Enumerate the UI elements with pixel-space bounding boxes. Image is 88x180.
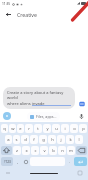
button[interactable]: t bbox=[34, 124, 42, 133]
staticText: Files, apps... bbox=[36, 114, 57, 119]
button[interactable]: n bbox=[58, 146, 66, 155]
button[interactable]: o bbox=[70, 124, 78, 133]
staticText: m bbox=[69, 148, 73, 154]
staticText: o bbox=[73, 126, 76, 132]
staticText: b bbox=[52, 148, 55, 154]
staticText: x bbox=[25, 148, 28, 154]
staticText: a bbox=[7, 137, 10, 143]
button[interactable]: x bbox=[22, 146, 30, 155]
staticText: j bbox=[60, 137, 62, 143]
staticText: where aliens bbox=[7, 101, 32, 106]
staticText: h bbox=[51, 137, 54, 143]
button[interactable]: Enter bbox=[74, 157, 87, 166]
button[interactable]: r bbox=[25, 124, 33, 133]
button[interactable]: Shift bbox=[1, 146, 12, 155]
button[interactable]: e bbox=[17, 124, 24, 133]
staticText: f bbox=[33, 137, 35, 143]
button[interactable]: Create a story about a fantasy world bbox=[3, 87, 75, 109]
staticText: w bbox=[11, 126, 15, 132]
staticText: invade bbox=[32, 101, 45, 106]
staticText: v bbox=[43, 148, 46, 154]
button[interactable]: Emoji bbox=[22, 157, 29, 166]
button[interactable]: h bbox=[48, 135, 56, 144]
button[interactable]: Files, apps... bbox=[27, 112, 60, 121]
staticText: z bbox=[16, 148, 18, 154]
staticText: Create a story about a fantasy world bbox=[7, 90, 71, 100]
button[interactable]: . bbox=[66, 157, 73, 166]
staticText: y bbox=[46, 126, 49, 132]
button[interactable]: u bbox=[52, 124, 60, 133]
button[interactable]: k bbox=[66, 135, 74, 144]
button[interactable]: z bbox=[13, 146, 21, 155]
button[interactable]: p bbox=[79, 124, 87, 133]
staticText: d bbox=[24, 137, 27, 143]
button[interactable]: Voice input bbox=[77, 112, 85, 120]
button[interactable]: i bbox=[61, 124, 69, 133]
staticText: c bbox=[34, 148, 37, 154]
button[interactable]: l bbox=[75, 135, 83, 144]
button[interactable]: a bbox=[5, 135, 12, 144]
button[interactable]: s bbox=[13, 135, 20, 144]
staticText: ?123 bbox=[4, 160, 11, 164]
staticText: r bbox=[28, 126, 30, 132]
button[interactable]: , bbox=[14, 157, 21, 166]
staticText: Creative bbox=[17, 11, 37, 18]
button[interactable]: d bbox=[21, 135, 29, 144]
button[interactable]: m bbox=[67, 146, 75, 155]
button[interactable]: Back bbox=[3, 9, 13, 19]
staticText: i bbox=[64, 126, 66, 132]
button[interactable]: Assistant bbox=[3, 112, 11, 120]
button[interactable]: w bbox=[9, 124, 16, 133]
button[interactable]: v bbox=[40, 146, 48, 155]
staticText: k bbox=[69, 137, 72, 143]
button[interactable]: Backspace bbox=[76, 146, 87, 155]
staticText: t bbox=[37, 126, 39, 132]
button[interactable]: f bbox=[30, 135, 38, 144]
button[interactable]: b bbox=[49, 146, 57, 155]
staticText: s bbox=[15, 137, 18, 143]
button[interactable]: ?123 bbox=[1, 157, 13, 166]
button[interactable]: Send bbox=[77, 99, 86, 108]
staticText: p bbox=[82, 126, 85, 132]
staticText: . bbox=[69, 159, 71, 164]
staticText: 11:35 bbox=[2, 2, 11, 6]
staticText: n bbox=[61, 148, 64, 154]
staticText: , bbox=[17, 159, 19, 164]
button[interactable]: c bbox=[31, 146, 39, 155]
staticText: q bbox=[3, 126, 6, 132]
button[interactable]: g bbox=[39, 135, 47, 144]
staticText: e bbox=[19, 126, 22, 132]
button[interactable]: j bbox=[57, 135, 65, 144]
button[interactable]: q bbox=[1, 124, 8, 133]
staticText: u bbox=[55, 126, 58, 132]
staticText: l bbox=[78, 137, 80, 143]
staticText: g bbox=[42, 137, 45, 143]
button[interactable]: y bbox=[43, 124, 51, 133]
